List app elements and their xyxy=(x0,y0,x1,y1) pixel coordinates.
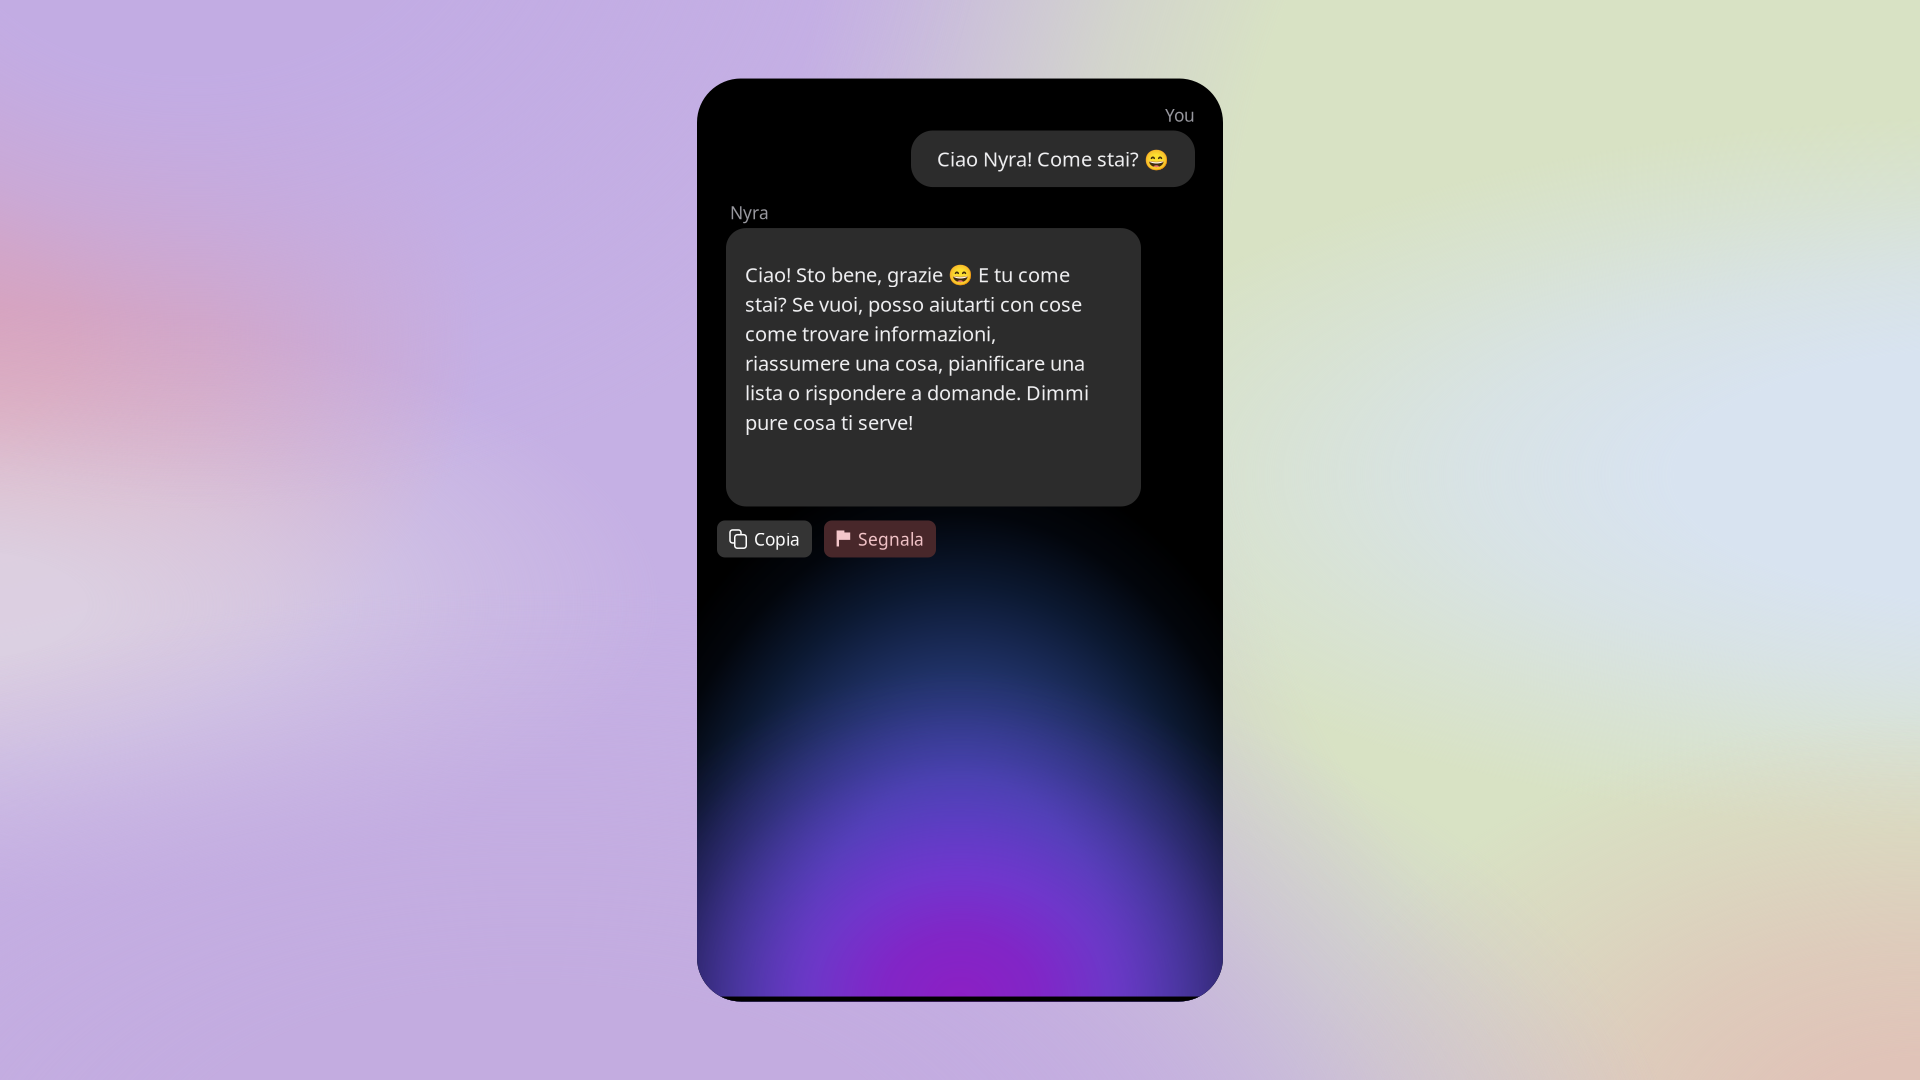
staticText: Ciao Nyra! Come stai? 😄 xyxy=(937,145,1169,172)
staticText: Segnala xyxy=(858,527,924,550)
staticText: You xyxy=(1165,103,1195,126)
staticText: Nyra xyxy=(730,201,769,224)
staticText: Ciao! Sto bene, grazie 😄 E tu come stai?… xyxy=(745,261,1089,435)
staticText: Copia xyxy=(754,527,800,550)
button[interactable]: Ciao Nyra! Come stai? 😄 xyxy=(911,130,1195,187)
button[interactable]: Copia xyxy=(717,520,812,557)
button[interactable]: Segnala xyxy=(824,520,936,557)
